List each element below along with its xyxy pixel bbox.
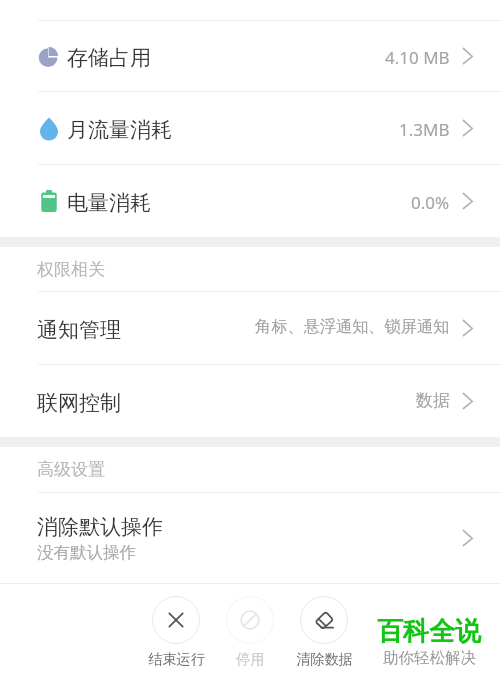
staticText: 数据 xyxy=(416,390,450,411)
button[interactable]: 电量消耗 xyxy=(0,165,500,237)
staticText: 电量消耗 xyxy=(67,190,151,216)
button[interactable]: 月流量消耗 xyxy=(0,92,500,164)
button[interactable]: 通知管理 xyxy=(0,292,500,364)
button[interactable]: 结束运行 xyxy=(139,596,213,668)
staticText: 高级设置 xyxy=(37,459,105,480)
staticText: 1.3MB xyxy=(399,118,450,141)
button[interactable]: 联网控制 xyxy=(0,365,500,437)
staticText: 清除数据 xyxy=(296,650,353,668)
staticText: 月流量消耗 xyxy=(67,117,172,143)
button[interactable]: 停用 xyxy=(213,596,287,668)
staticText: 联网控制 xyxy=(37,390,121,416)
staticText: 角标、悬浮通知、锁屏通知 xyxy=(255,316,450,336)
staticText: 百科全说 xyxy=(377,615,481,648)
staticText: 停用 xyxy=(236,650,265,668)
staticText: 4.10 MB xyxy=(385,46,450,69)
button[interactable]: 消除默认操作 xyxy=(0,493,500,583)
staticText: 消除默认操作 xyxy=(37,514,163,540)
staticText: 存储占用 xyxy=(67,45,151,71)
button[interactable]: 存储占用 xyxy=(0,21,500,91)
staticText: 权限相关 xyxy=(37,259,105,280)
staticText: 没有默认操作 xyxy=(37,542,136,563)
staticText: 通知管理 xyxy=(37,317,121,343)
button[interactable]: 清除数据 xyxy=(287,596,361,668)
staticText: 结束运行 xyxy=(148,650,205,668)
staticText: 助你轻松解决 xyxy=(383,648,476,668)
staticText: 0.0% xyxy=(411,191,450,214)
